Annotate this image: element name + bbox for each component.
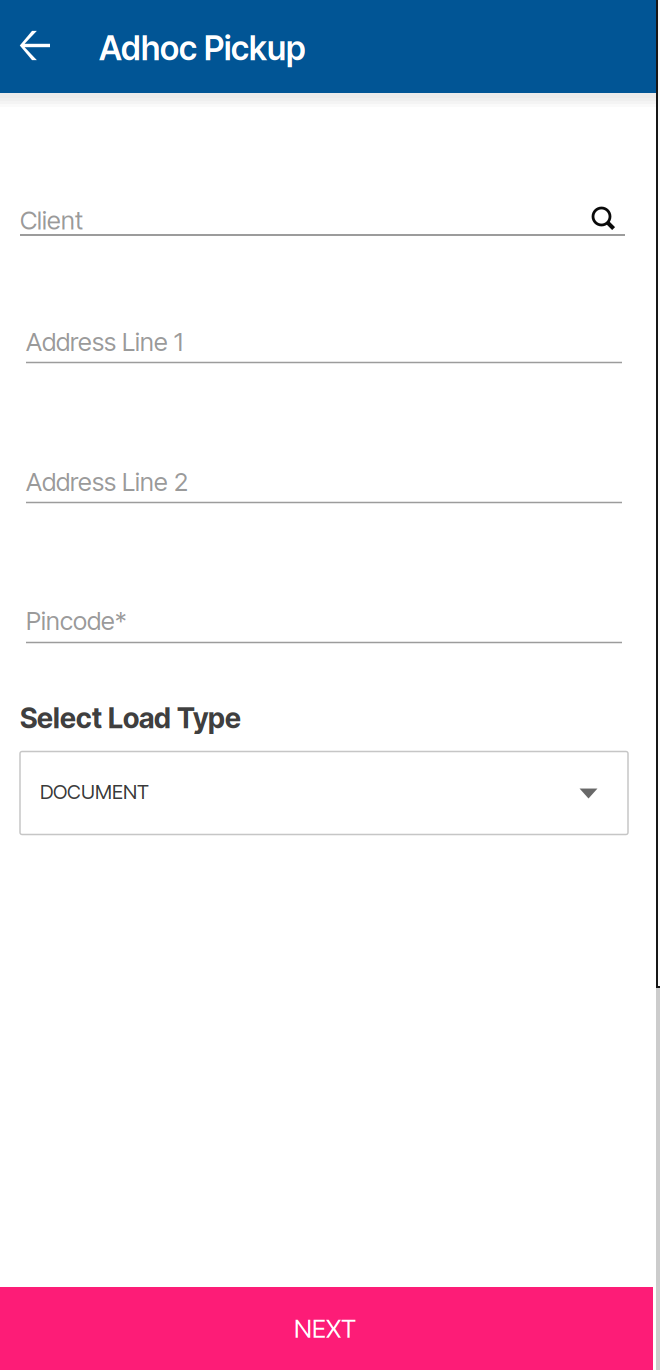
staticText: Adhoc Pickup [99, 28, 306, 68]
button[interactable]: Address Line 2 [26, 466, 622, 510]
staticText: Pincode* [26, 605, 126, 636]
button[interactable]: Address Line 1 [26, 326, 622, 370]
staticText: Select Load Type [20, 701, 241, 735]
staticText: Address Line 2 [26, 466, 188, 497]
button[interactable]: Client [20, 205, 625, 243]
staticText: Address Line 1 [26, 326, 183, 357]
button[interactable]: DOCUMENT [20, 751, 628, 834]
staticText: Client [20, 205, 83, 236]
button[interactable]: Back [4, 0, 68, 93]
staticText: NEXT [294, 1313, 356, 1344]
button[interactable]: Search client [580, 195, 628, 243]
button[interactable]: NEXT [0, 1287, 653, 1370]
staticText: DOCUMENT [40, 779, 149, 804]
button[interactable]: Pincode* [26, 605, 622, 650]
